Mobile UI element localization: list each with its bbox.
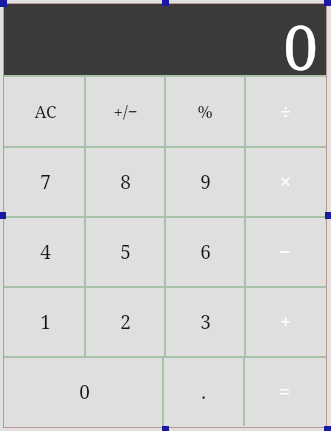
button[interactable]: % (166, 77, 244, 146)
button[interactable]: 9 (166, 148, 244, 216)
button[interactable]: 0 (6, 358, 162, 426)
staticText: 8 (120, 169, 131, 195)
button[interactable]: AC (6, 77, 84, 146)
staticText: 0 (283, 4, 318, 73)
button[interactable]: +/− (86, 77, 164, 146)
button[interactable]: 4 (6, 218, 84, 286)
staticText: +/− (113, 100, 138, 123)
button[interactable]: 5 (86, 218, 164, 286)
staticText: 5 (120, 239, 131, 265)
button[interactable]: 2 (86, 288, 164, 356)
staticText: . (201, 379, 206, 405)
staticText: = (279, 379, 290, 405)
button[interactable]: 7 (6, 148, 84, 216)
button[interactable]: . (164, 358, 243, 426)
staticText: 7 (40, 169, 51, 195)
staticText: 3 (200, 309, 211, 335)
staticText: AC (34, 100, 57, 123)
staticText: 0 (79, 379, 90, 405)
button[interactable]: 6 (166, 218, 244, 286)
staticText: − (279, 239, 291, 265)
button[interactable]: Calculator display, 0 (4, 4, 326, 75)
staticText: 9 (200, 169, 211, 195)
button[interactable]: 1 (6, 288, 84, 356)
staticText: × (280, 169, 291, 195)
staticText: 2 (120, 309, 131, 335)
staticText: ÷ (280, 99, 291, 125)
button[interactable]: 3 (166, 288, 244, 356)
button[interactable]: 8 (86, 148, 164, 216)
staticText: 4 (40, 239, 51, 265)
staticText: % (197, 100, 213, 123)
staticText: 6 (200, 239, 211, 265)
staticText: 1 (40, 309, 51, 335)
staticText: + (280, 309, 291, 335)
